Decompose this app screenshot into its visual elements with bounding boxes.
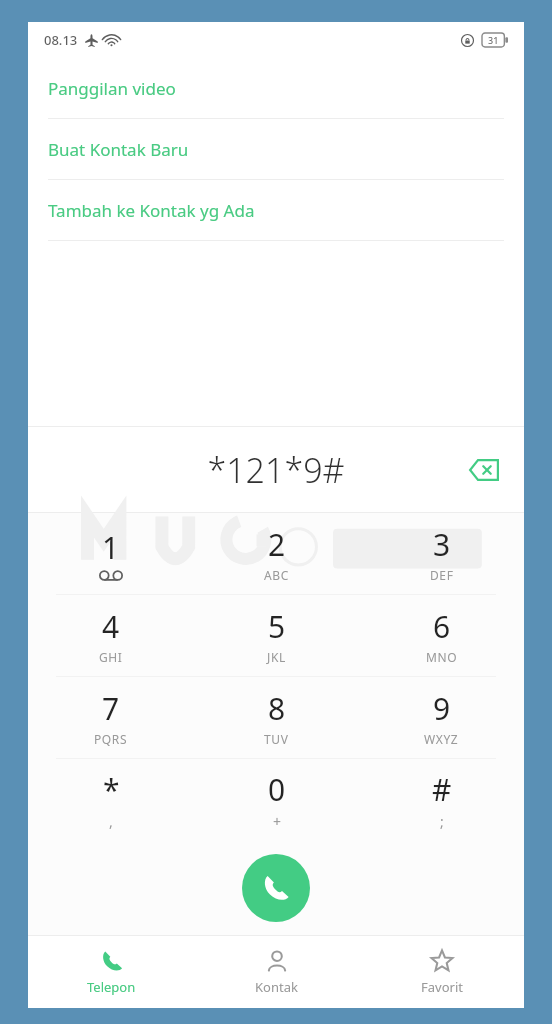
button[interactable]: *	[28, 759, 194, 840]
button[interactable]: 0	[194, 759, 359, 840]
staticText: 1	[102, 527, 120, 568]
staticText: *121*9#	[207, 447, 345, 493]
staticText: 8	[268, 688, 286, 729]
staticText: 4	[102, 606, 120, 647]
button[interactable]: Call	[242, 854, 310, 922]
staticText: JKL	[267, 649, 286, 665]
button[interactable]: Panggilan video	[28, 58, 524, 118]
staticText: 2	[268, 524, 286, 565]
staticText: 9	[433, 688, 451, 729]
button[interactable]: 6	[359, 595, 524, 676]
button[interactable]: Favorit	[359, 936, 524, 1008]
staticText: 7	[102, 688, 120, 729]
staticText: Kontak	[255, 978, 298, 996]
button[interactable]: Telepon	[28, 936, 194, 1008]
staticText: 6	[433, 606, 451, 647]
staticText: Telepon	[87, 978, 136, 996]
button[interactable]: Backspace	[458, 444, 510, 496]
staticText: ;	[440, 812, 445, 831]
staticText: 5	[268, 606, 286, 647]
button[interactable]: 8	[194, 677, 359, 758]
staticText: #	[432, 769, 452, 810]
staticText: Buat Kontak Baru	[48, 138, 189, 161]
staticText: TUV	[264, 731, 289, 747]
button[interactable]: Kontak	[194, 936, 359, 1008]
staticText: WXYZ	[424, 731, 459, 747]
staticText: DEF	[430, 567, 454, 583]
staticText: Favorit	[421, 978, 463, 996]
staticText: 0	[268, 769, 286, 810]
button[interactable]: 5	[194, 595, 359, 676]
button[interactable]: 1	[28, 513, 194, 594]
staticText: PQRS	[94, 731, 128, 747]
staticText: Panggilan video	[48, 77, 176, 100]
staticText: +	[273, 812, 282, 831]
button[interactable]: 4	[28, 595, 194, 676]
button[interactable]: 3	[359, 513, 524, 594]
staticText: 08.13	[44, 31, 78, 49]
button[interactable]: 2	[194, 513, 359, 594]
staticText: Tambah ke Kontak yg Ada	[48, 199, 255, 222]
staticText: ABC	[264, 567, 289, 583]
staticText: 3	[433, 524, 451, 565]
staticText: MNO	[426, 649, 458, 665]
staticText: GHI	[99, 649, 123, 665]
staticText: 31	[488, 34, 499, 46]
button[interactable]: Buat Kontak Baru	[28, 119, 524, 179]
button[interactable]: 7	[28, 677, 194, 758]
staticText: ,	[109, 812, 114, 831]
staticText: *	[103, 769, 120, 810]
button[interactable]: 9	[359, 677, 524, 758]
button[interactable]: #	[359, 759, 524, 840]
button[interactable]: Tambah ke Kontak yg Ada	[28, 180, 524, 240]
